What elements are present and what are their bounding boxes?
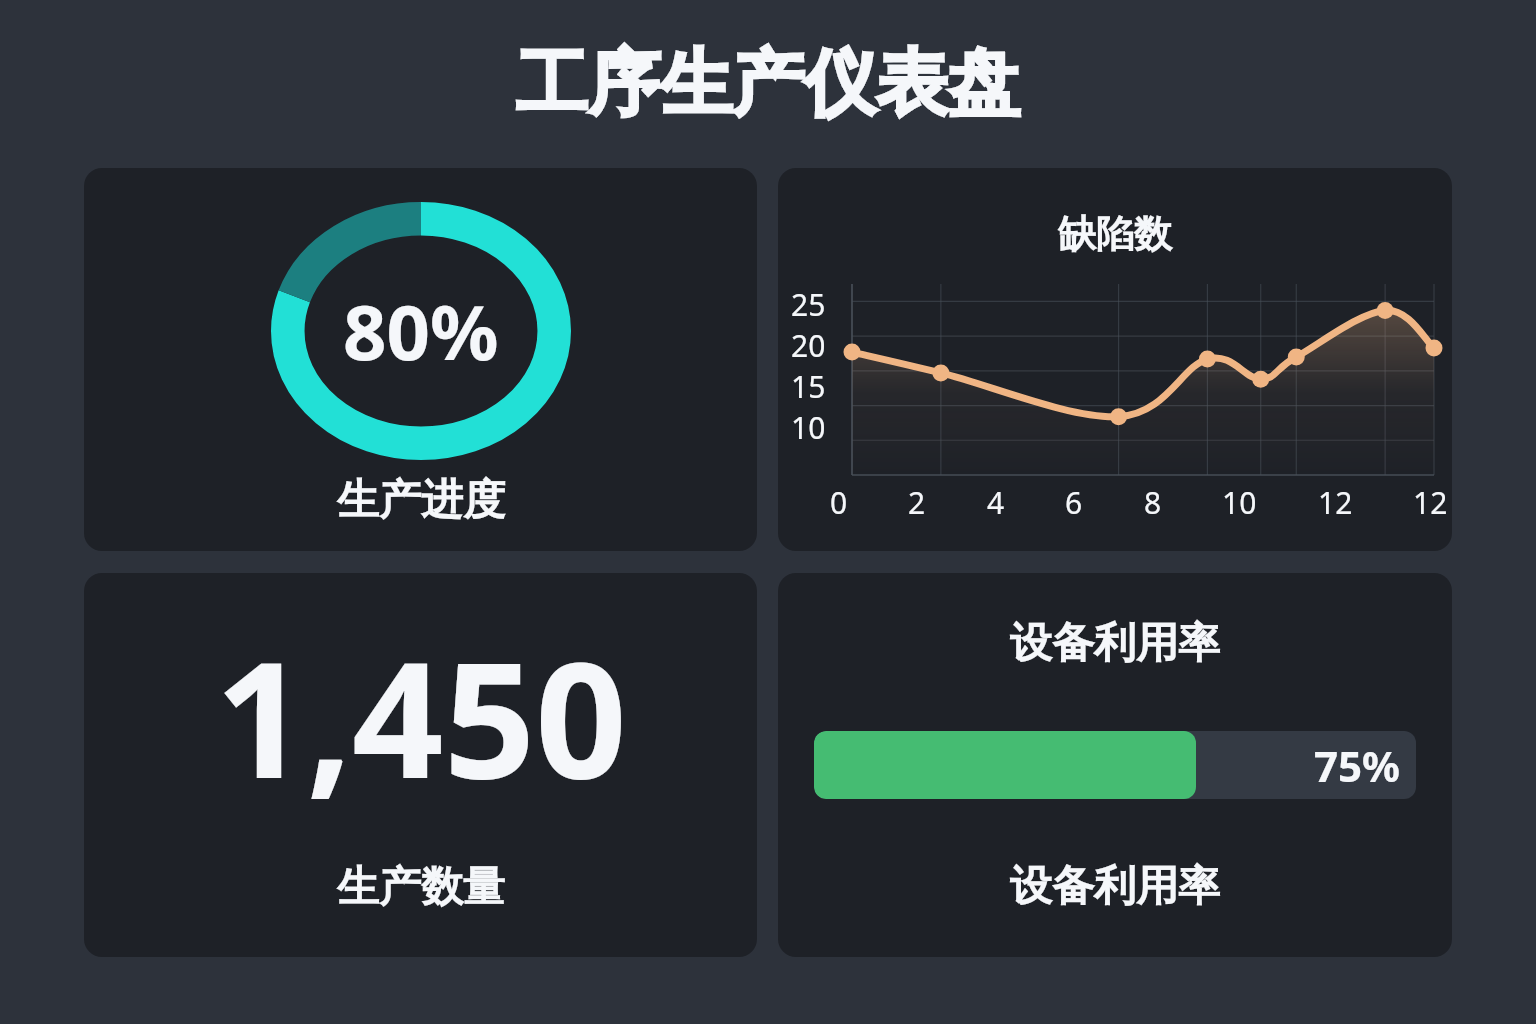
button[interactable]: 设备利用率 bbox=[778, 573, 1452, 957]
staticText: 15 bbox=[791, 366, 826, 407]
staticText: 设备利用率 bbox=[1010, 860, 1220, 913]
button[interactable]: 设备利用率 75% bbox=[814, 731, 1416, 799]
staticText: 20 bbox=[791, 325, 826, 366]
staticText: 6 bbox=[1065, 482, 1083, 523]
staticText: 生产进度 bbox=[337, 474, 505, 527]
staticText: 设备利用率 bbox=[1010, 617, 1220, 670]
staticText: 1,450 bbox=[215, 607, 627, 825]
button[interactable]: 1,450 bbox=[84, 573, 757, 957]
staticText: 10 bbox=[1222, 482, 1257, 523]
staticText: 80% bbox=[343, 279, 499, 383]
staticText: 0 bbox=[830, 482, 848, 523]
staticText: 生产数量 bbox=[337, 861, 505, 914]
staticText: 12 bbox=[1318, 482, 1353, 523]
button[interactable]: 80% bbox=[84, 168, 757, 551]
button[interactable]: 缺陷数 bbox=[778, 168, 1452, 551]
staticText: 25 bbox=[791, 284, 826, 325]
staticText: 工序生产仪表盘 bbox=[516, 39, 1020, 130]
staticText: 2 bbox=[908, 482, 926, 523]
staticText: 8 bbox=[1144, 482, 1162, 523]
staticText: 75% bbox=[1314, 737, 1400, 794]
staticText: 10 bbox=[791, 407, 826, 448]
staticText: 4 bbox=[987, 482, 1005, 523]
staticText: 12 bbox=[1413, 482, 1448, 523]
staticText: 缺陷数 bbox=[1058, 210, 1172, 258]
